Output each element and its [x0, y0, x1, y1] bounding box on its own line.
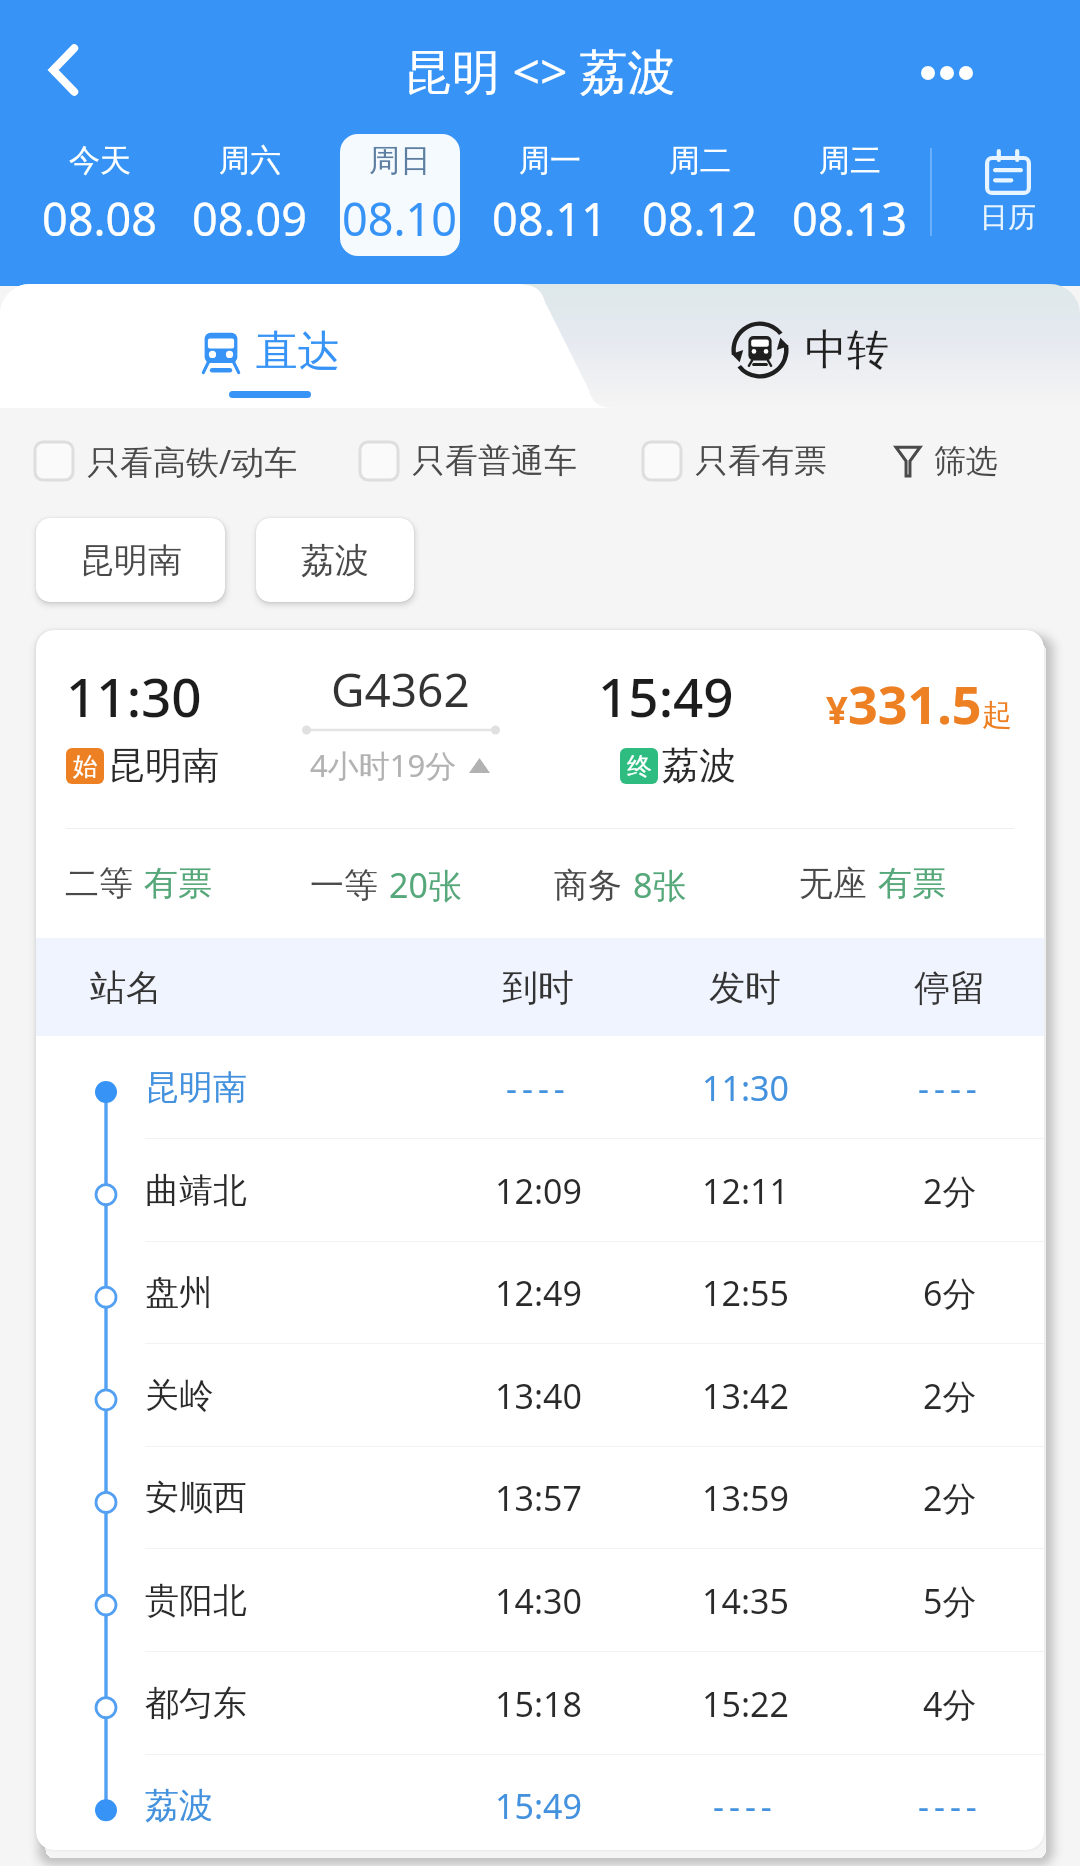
staticText: G4362 — [331, 658, 470, 721]
staticText: 08.12 — [642, 188, 758, 249]
staticText: ---- — [918, 1783, 982, 1829]
staticText: 荔波 — [145, 1784, 213, 1827]
button[interactable]: 筛选 — [894, 404, 998, 518]
staticText: 11:30 — [66, 660, 202, 732]
staticText: 4分 — [923, 1681, 977, 1727]
staticText: 13:57 — [495, 1475, 582, 1521]
staticText: 只看普通车 — [412, 440, 577, 482]
staticText: 12:09 — [495, 1168, 582, 1214]
button[interactable]: 只看普通车 — [360, 404, 577, 518]
button[interactable]: 周一 — [490, 134, 610, 256]
staticText: ¥ — [826, 683, 848, 735]
button[interactable]: 只看高铁/动车 — [35, 404, 298, 518]
staticText: 周一 — [519, 141, 581, 180]
staticText: 安顺西 — [145, 1476, 247, 1519]
staticText: 14:35 — [702, 1578, 789, 1624]
staticText: 站名 — [90, 965, 162, 1010]
staticText: 二等 — [65, 862, 133, 905]
staticText: 昆明 <> 荔波 — [404, 38, 676, 104]
staticText: 08.09 — [192, 188, 308, 249]
button[interactable]: 周六 — [190, 134, 310, 256]
button[interactable]: 今天 — [40, 134, 160, 256]
staticText: 筛选 — [934, 441, 998, 481]
staticText: 15:49 — [598, 660, 734, 732]
staticText: 中转 — [805, 324, 889, 377]
button[interactable]: 只看有票 — [643, 404, 827, 518]
button[interactable]: 周二 — [640, 134, 760, 256]
staticText: 昆明南 — [145, 1066, 247, 1109]
staticText: 今天 — [69, 141, 131, 180]
staticText: ---- — [713, 1783, 777, 1829]
staticText: 周三 — [819, 141, 881, 180]
staticText: 周六 — [219, 141, 281, 180]
staticText: 20张 — [389, 862, 462, 908]
staticText: 8张 — [633, 862, 687, 908]
button[interactable]: Back — [26, 32, 102, 108]
staticText: 4小时19分 — [310, 744, 457, 786]
staticText: 12:11 — [702, 1168, 789, 1214]
staticText: 13:59 — [702, 1475, 789, 1521]
button[interactable]: More options — [906, 32, 988, 114]
staticText: 有票 — [878, 862, 946, 905]
staticText: 曲靖北 — [145, 1169, 247, 1212]
staticText: 331.5 — [848, 668, 982, 739]
staticText: ---- — [918, 1065, 982, 1111]
button[interactable]: 荔波 — [256, 518, 414, 602]
staticText: 停留 — [914, 965, 986, 1010]
staticText: 13:42 — [702, 1373, 789, 1419]
staticText: 15:22 — [702, 1681, 789, 1727]
staticText: 2分 — [923, 1475, 977, 1521]
staticText: 08.13 — [792, 188, 908, 249]
staticText: 周二 — [669, 141, 731, 180]
staticText: 12:49 — [495, 1270, 582, 1316]
staticText: 贵阳北 — [145, 1579, 247, 1622]
staticText: 关岭 — [145, 1374, 213, 1417]
staticText: 08.08 — [42, 188, 158, 249]
button[interactable]: 昆明南 — [36, 518, 225, 602]
button[interactable]: 周日 — [340, 134, 460, 256]
staticText: 2分 — [923, 1373, 977, 1419]
staticText: 昆明南 — [80, 539, 182, 582]
staticText: 终 — [627, 751, 652, 782]
staticText: 直达 — [256, 325, 340, 378]
staticText: 一等 — [310, 864, 378, 907]
button[interactable]: 周三 — [790, 134, 910, 256]
staticText: 08.10 — [342, 188, 458, 249]
staticText: 08.11 — [492, 188, 608, 249]
staticText: 有票 — [144, 862, 212, 905]
staticText: 荔波 — [662, 742, 736, 789]
staticText: 只看有票 — [695, 440, 827, 482]
staticText: 始 — [73, 751, 98, 782]
staticText: 2分 — [923, 1168, 977, 1214]
staticText: 都匀东 — [145, 1682, 247, 1725]
staticText: 6分 — [923, 1270, 977, 1316]
button[interactable]: 直达 — [0, 284, 540, 408]
staticText: 只看高铁/动车 — [87, 439, 298, 484]
staticText: ---- — [506, 1065, 570, 1111]
staticText: 11:30 — [702, 1065, 789, 1111]
staticText: 12:55 — [702, 1270, 789, 1316]
staticText: 荔波 — [301, 539, 369, 582]
staticText: 到时 — [502, 965, 574, 1010]
staticText: 15:49 — [495, 1783, 582, 1829]
staticText: 无座 — [799, 862, 867, 905]
staticText: 15:18 — [495, 1681, 582, 1727]
staticText: 商务 — [554, 864, 622, 907]
staticText: 14:30 — [495, 1578, 582, 1624]
staticText: 发时 — [709, 965, 781, 1010]
staticText: 日历 — [980, 200, 1036, 235]
button[interactable]: Calendar — [935, 128, 1080, 256]
staticText: 起 — [982, 696, 1012, 734]
staticText: 周日 — [369, 141, 431, 180]
staticText: 昆明南 — [108, 742, 219, 789]
staticText: 5分 — [923, 1578, 977, 1624]
staticText: 盘州 — [145, 1271, 213, 1314]
staticText: 13:40 — [495, 1373, 582, 1419]
button[interactable]: 中转 — [540, 284, 1080, 408]
